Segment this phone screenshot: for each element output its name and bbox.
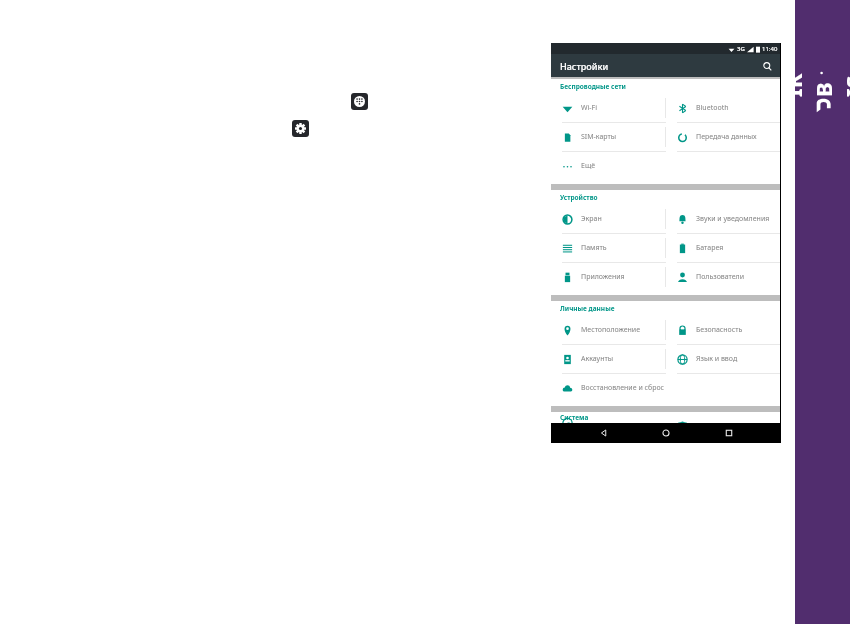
button[interactable]: SIM-карты <box>551 123 665 151</box>
staticText: Местоположение <box>581 325 641 335</box>
staticText: Звуки и уведомления <box>696 214 770 224</box>
staticText: SIM-карты <box>581 132 617 142</box>
staticText: Память <box>581 243 607 253</box>
staticText: 3G <box>737 45 745 53</box>
button[interactable]: Wi-Fi <box>551 94 665 122</box>
staticText: Личные данные <box>560 304 615 313</box>
staticText: Аккаунты <box>581 354 614 364</box>
staticText: Настройки <box>560 60 609 72</box>
button[interactable]: Память <box>551 234 665 262</box>
button[interactable]: Ещё <box>551 152 665 180</box>
staticText: Беспроводные сети <box>560 82 626 91</box>
staticText: Восстановление и сброс <box>581 383 665 393</box>
staticText: Устройство <box>560 193 598 202</box>
button[interactable]: Приложения <box>551 263 665 291</box>
staticText: Ещё <box>581 161 596 171</box>
button[interactable]: Экран <box>551 205 665 233</box>
button[interactable]: Местоположение <box>551 316 665 344</box>
button[interactable]: Bluetooth <box>666 94 781 122</box>
button[interactable]: Язык и ввод <box>666 345 781 373</box>
button[interactable]: Пользователи <box>666 263 781 291</box>
staticText: IRBIS <box>778 73 850 97</box>
staticText: Безопасность <box>696 325 743 335</box>
staticText: Bluetooth <box>696 103 729 113</box>
button[interactable]: Search <box>759 58 775 74</box>
button[interactable]: Home <box>656 423 676 443</box>
button[interactable]: Recents <box>719 423 739 443</box>
button[interactable]: All apps <box>351 93 368 110</box>
staticText: Передача данных <box>696 132 757 142</box>
button[interactable]: Безопасность <box>666 316 781 344</box>
staticText: Батарея <box>696 243 724 253</box>
button[interactable]: Settings <box>292 120 309 137</box>
staticText: Wi-Fi <box>581 103 598 113</box>
staticText: Система <box>560 413 589 422</box>
button[interactable]: Восстановление и сброс <box>551 374 665 402</box>
staticText: Язык и ввод <box>696 354 738 364</box>
button[interactable]: Звуки и уведомления <box>666 205 781 233</box>
button[interactable]: Back <box>594 423 614 443</box>
button[interactable]: Аккаунты <box>551 345 665 373</box>
button[interactable]: Батарея <box>666 234 781 262</box>
staticText: Экран <box>581 214 602 224</box>
staticText: Приложения <box>581 272 625 282</box>
button[interactable]: Передача данных <box>666 123 781 151</box>
staticText: 11:40 <box>762 45 778 53</box>
staticText: Пользователи <box>696 272 745 282</box>
